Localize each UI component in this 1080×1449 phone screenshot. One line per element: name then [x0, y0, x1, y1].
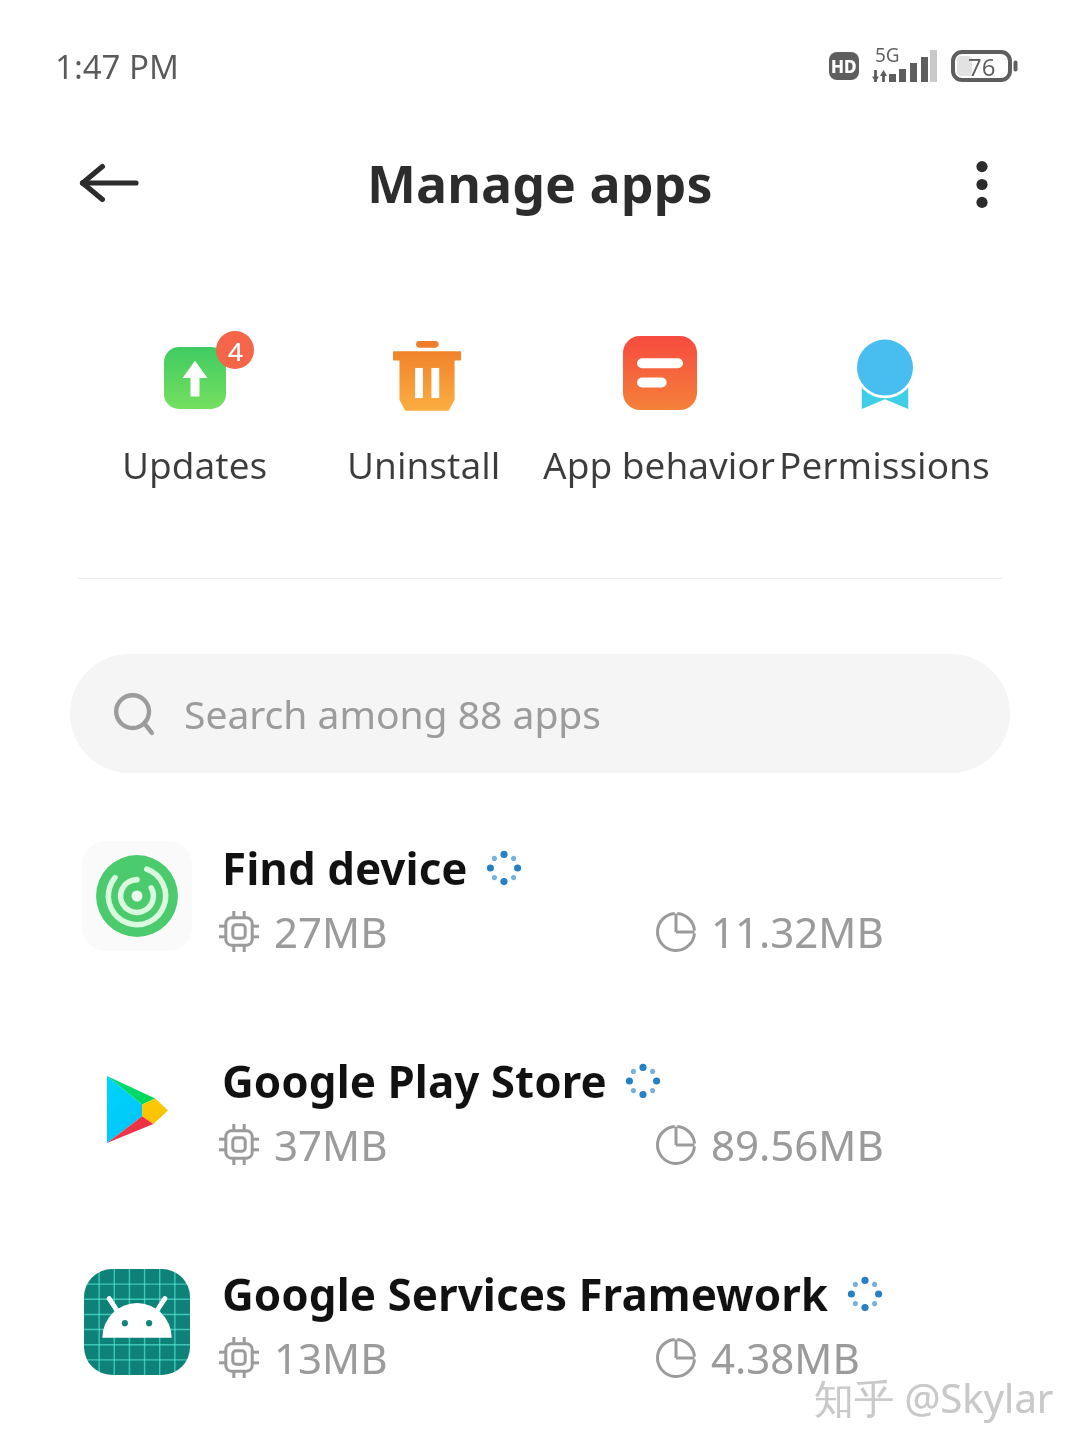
- button[interactable]: Back: [48, 150, 168, 216]
- staticText: Updates: [122, 439, 268, 489]
- button[interactable]: Google Services Framework: [0, 1266, 1080, 1449]
- button[interactable]: Google Play Store: [0, 1053, 1080, 1253]
- staticText: 4: [228, 333, 243, 368]
- button[interactable]: Uninstall: [289, 325, 559, 497]
- staticText: 27MB: [274, 903, 388, 960]
- staticText: 11.32MB: [711, 903, 884, 960]
- button[interactable]: Search among 88 apps: [70, 654, 1010, 773]
- staticText: 13MB: [274, 1329, 388, 1386]
- staticText: 37MB: [274, 1116, 388, 1173]
- staticText: Google Play Store: [222, 1051, 607, 1111]
- button[interactable]: Permissions: [749, 325, 1019, 497]
- staticText: HD: [831, 55, 857, 78]
- staticText: 76: [968, 50, 996, 82]
- staticText: Uninstall: [347, 439, 501, 489]
- staticText: Manage apps: [367, 147, 713, 218]
- staticText: 1:47 PM: [55, 44, 179, 89]
- staticText: 知乎 @Skylar: [814, 1370, 1054, 1425]
- button[interactable]: 4: [60, 325, 330, 497]
- button[interactable]: More options: [946, 148, 1018, 220]
- staticText: Google Services Framework: [222, 1264, 829, 1324]
- staticText: 89.56MB: [711, 1116, 884, 1173]
- button[interactable]: App behavior: [524, 325, 794, 497]
- staticText: 4.38MB: [711, 1329, 860, 1386]
- staticText: 5G: [875, 42, 900, 68]
- staticText: Search among 88 apps: [184, 687, 602, 740]
- staticText: Find device: [222, 838, 468, 898]
- staticText: App behavior: [543, 439, 776, 489]
- staticText: Permissions: [779, 439, 990, 489]
- button[interactable]: Find device: [0, 840, 1080, 1040]
